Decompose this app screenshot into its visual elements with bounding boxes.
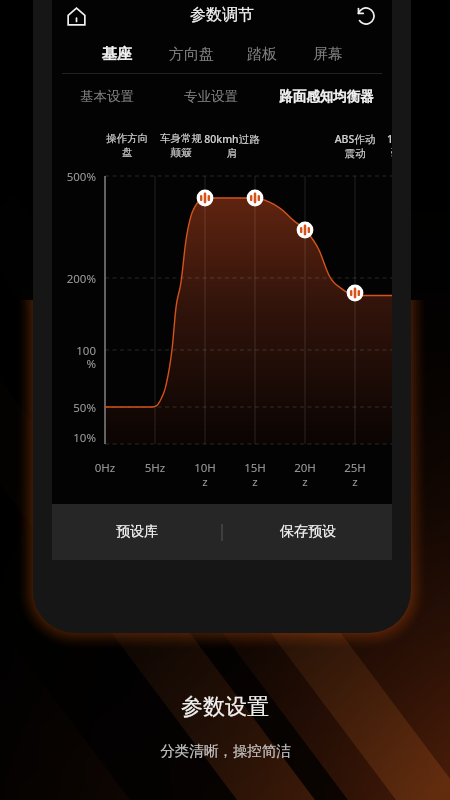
staticText: 基本设置	[80, 88, 134, 105]
staticText: 20H z	[280, 460, 330, 490]
button[interactable]: Reset	[352, 2, 380, 30]
button[interactable]: 方向盘	[159, 43, 223, 65]
staticText: 踏板	[247, 45, 277, 64]
button[interactable]: 屏幕	[296, 43, 360, 65]
button[interactable]: 基本设置	[52, 86, 167, 106]
button[interactable]: 路面感知均衡器	[266, 86, 386, 106]
button[interactable]: 踏板	[230, 43, 294, 65]
staticText: 路面感知均衡器	[279, 88, 374, 105]
staticText: 200%	[56, 271, 96, 287]
staticText: 操作方向 盘	[106, 132, 148, 160]
staticText: 500%	[56, 169, 96, 185]
staticText: 车身常规 颠簸	[160, 132, 202, 160]
staticText: 15H z	[230, 460, 280, 490]
staticText: 100 %	[56, 343, 96, 372]
button[interactable]: 基座	[85, 43, 149, 65]
staticText: 分类清晰，操控简洁	[160, 742, 291, 760]
staticText: 屏幕	[313, 45, 343, 64]
staticText: 25H z	[330, 460, 380, 490]
staticText: 参数调节	[190, 5, 254, 25]
staticText: 130 毫	[385, 132, 392, 160]
staticText: 保存预设	[280, 523, 336, 541]
staticText: 方向盘	[169, 45, 214, 64]
staticText: 50%	[56, 400, 96, 416]
button[interactable]: 保存预设	[223, 504, 392, 560]
staticText: 预设库	[116, 523, 158, 541]
staticText: ABS作动 震动	[334, 132, 376, 161]
staticText: 10H z	[180, 460, 230, 490]
staticText: 参数设置	[181, 693, 269, 721]
staticText: 基座	[102, 45, 132, 64]
staticText: 专业设置	[184, 88, 238, 105]
staticText: 5Hz	[130, 460, 180, 476]
button[interactable]: 预设库	[52, 504, 221, 560]
button[interactable]: Home	[62, 2, 90, 30]
staticText: 0Hz	[80, 460, 130, 476]
staticText: 10%	[56, 430, 96, 446]
button[interactable]: 专业设置	[151, 86, 271, 106]
staticText: 80kmh过路 肩	[204, 132, 260, 161]
